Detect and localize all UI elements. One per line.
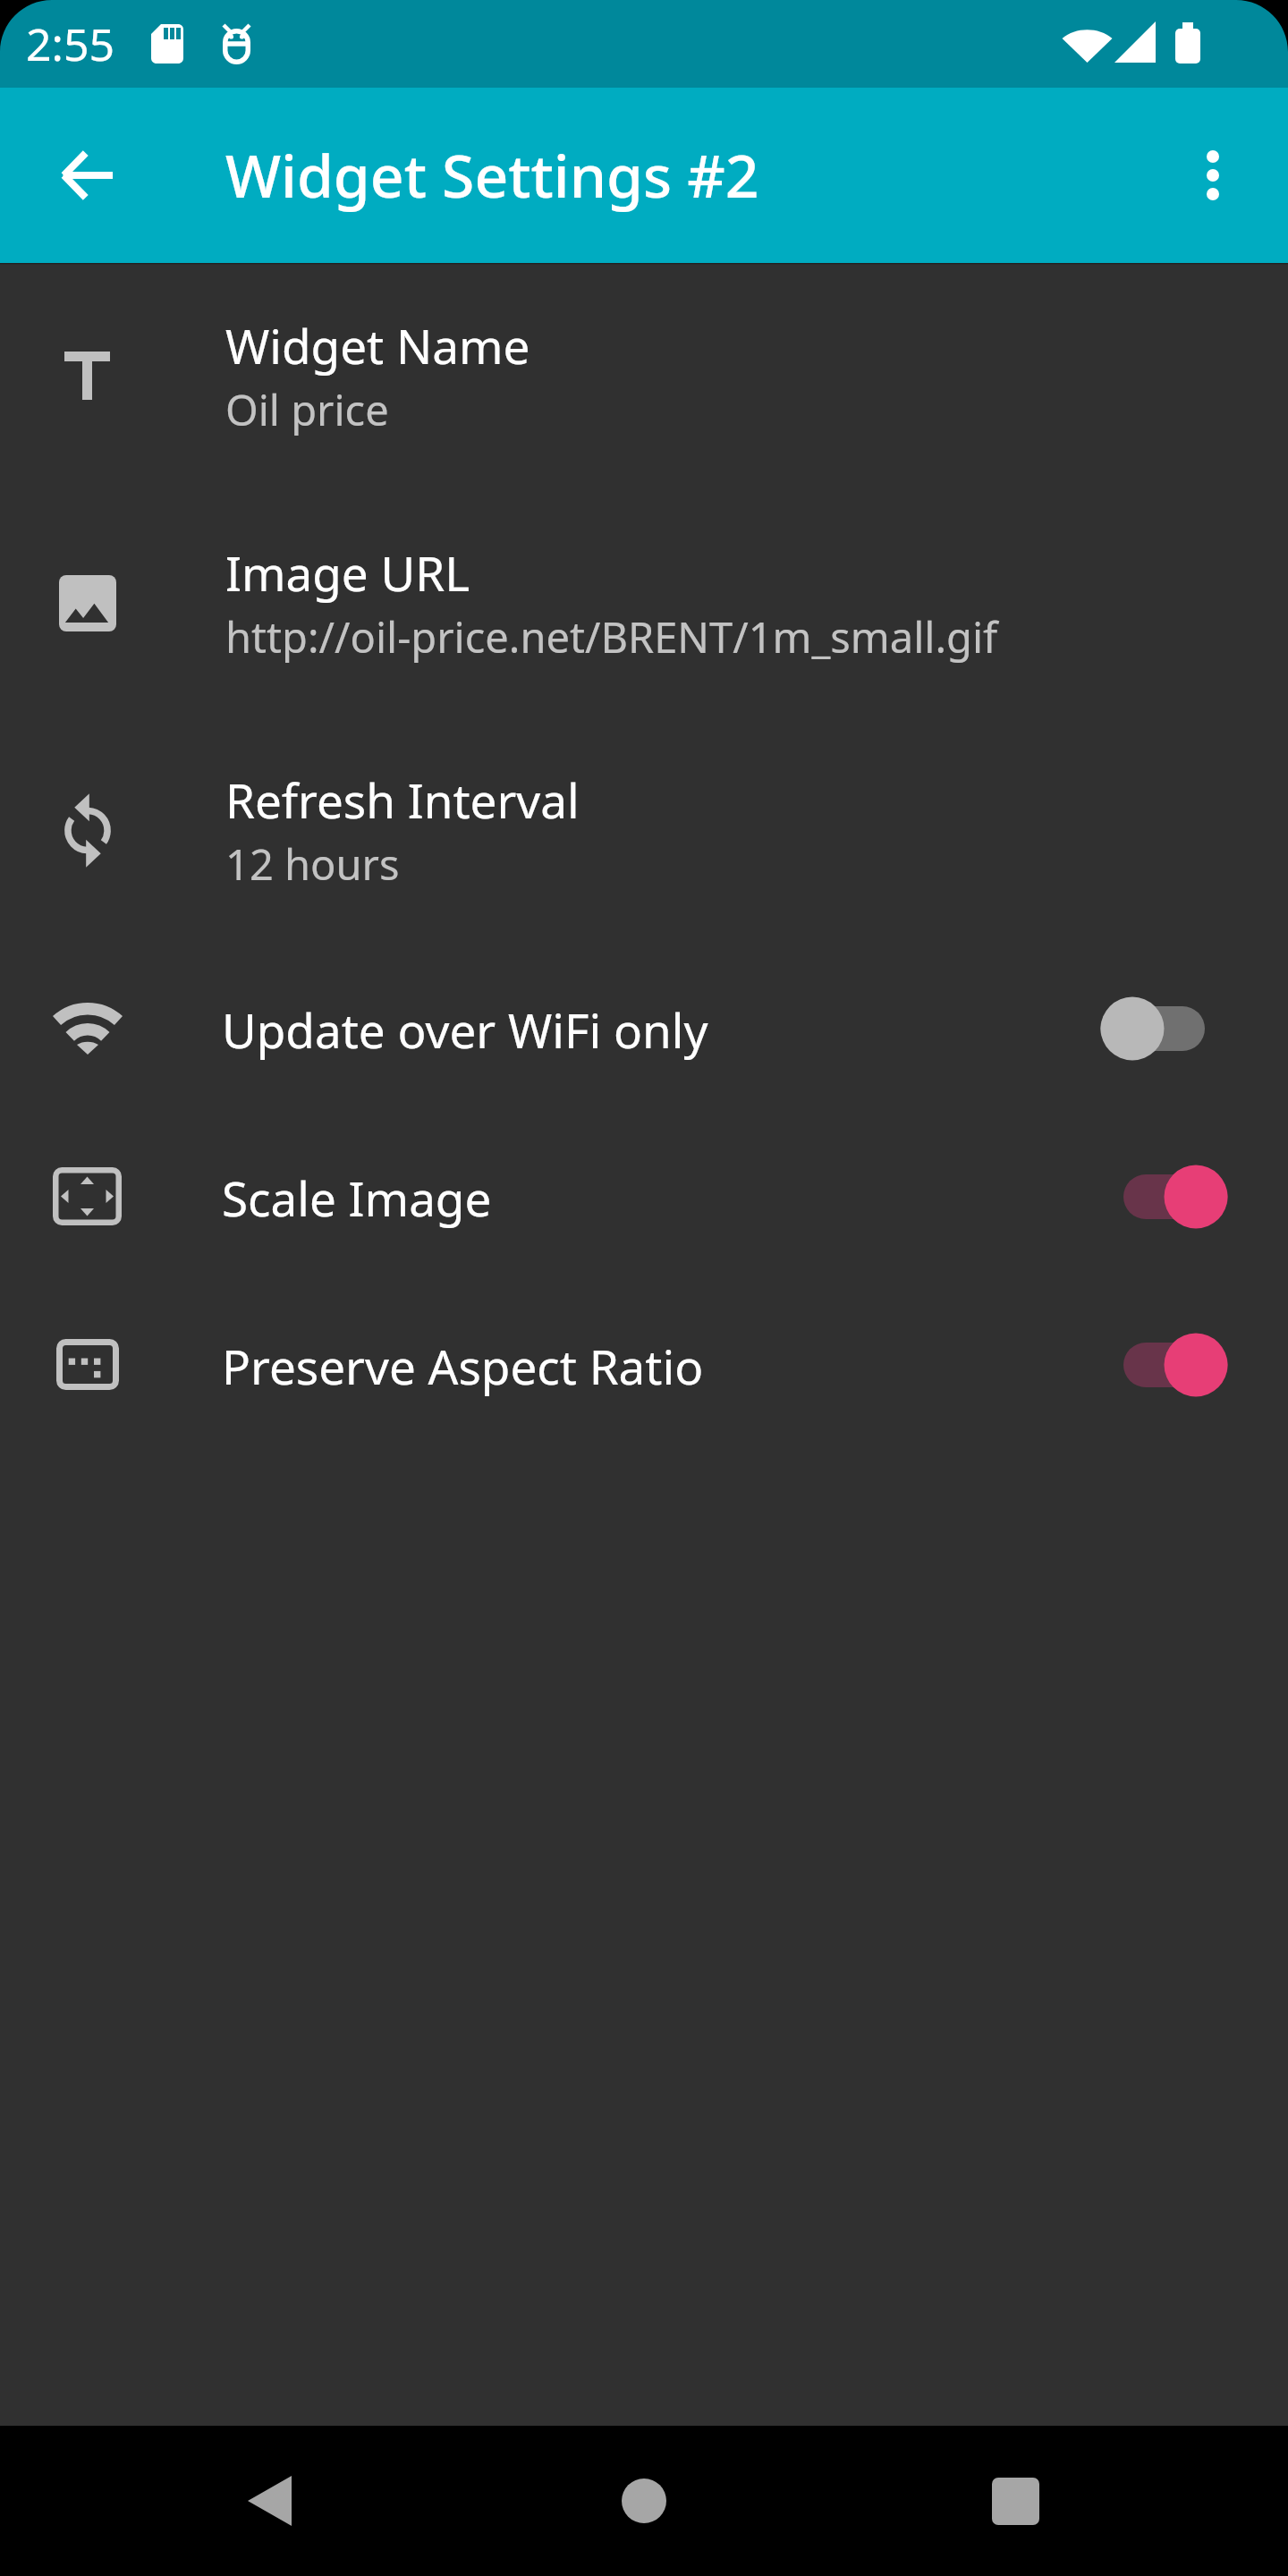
button[interactable]: Refresh Interval: [0, 719, 1288, 946]
button[interactable]: Home: [581, 2438, 707, 2563]
button[interactable]: Preserve Aspect Ratio, on: [1100, 1329, 1228, 1401]
button[interactable]: Back: [207, 2438, 332, 2563]
staticText: http://oil-price.net/BRENT/1m_small.gif: [225, 608, 998, 665]
staticText: Widget Name: [225, 313, 530, 377]
staticText: Scale Image: [222, 1165, 1148, 1230]
staticText: Oil price: [225, 381, 389, 438]
staticText: Widget Settings #2: [225, 134, 759, 215]
staticText: Refresh Interval: [225, 767, 580, 832]
button[interactable]: Update over WiFi only: [0, 946, 1288, 1114]
staticText: Update over WiFi only: [222, 997, 1148, 1062]
button[interactable]: More options: [1163, 125, 1263, 225]
button[interactable]: Widget Name: [0, 265, 1288, 492]
button[interactable]: Image URL: [0, 492, 1288, 719]
button[interactable]: Scale Image: [0, 1114, 1288, 1283]
staticText: Preserve Aspect Ratio: [222, 1334, 1148, 1398]
button[interactable]: Recent apps: [953, 2438, 1078, 2563]
staticText: 12 hours: [225, 835, 400, 893]
button[interactable]: Update over WiFi only, off: [1100, 993, 1228, 1064]
staticText: 2:55: [26, 13, 115, 74]
button[interactable]: Scale Image, on: [1100, 1161, 1228, 1233]
button[interactable]: Navigate up: [38, 125, 138, 225]
button[interactable]: Preserve Aspect Ratio: [0, 1283, 1288, 1451]
staticText: Image URL: [225, 540, 470, 605]
